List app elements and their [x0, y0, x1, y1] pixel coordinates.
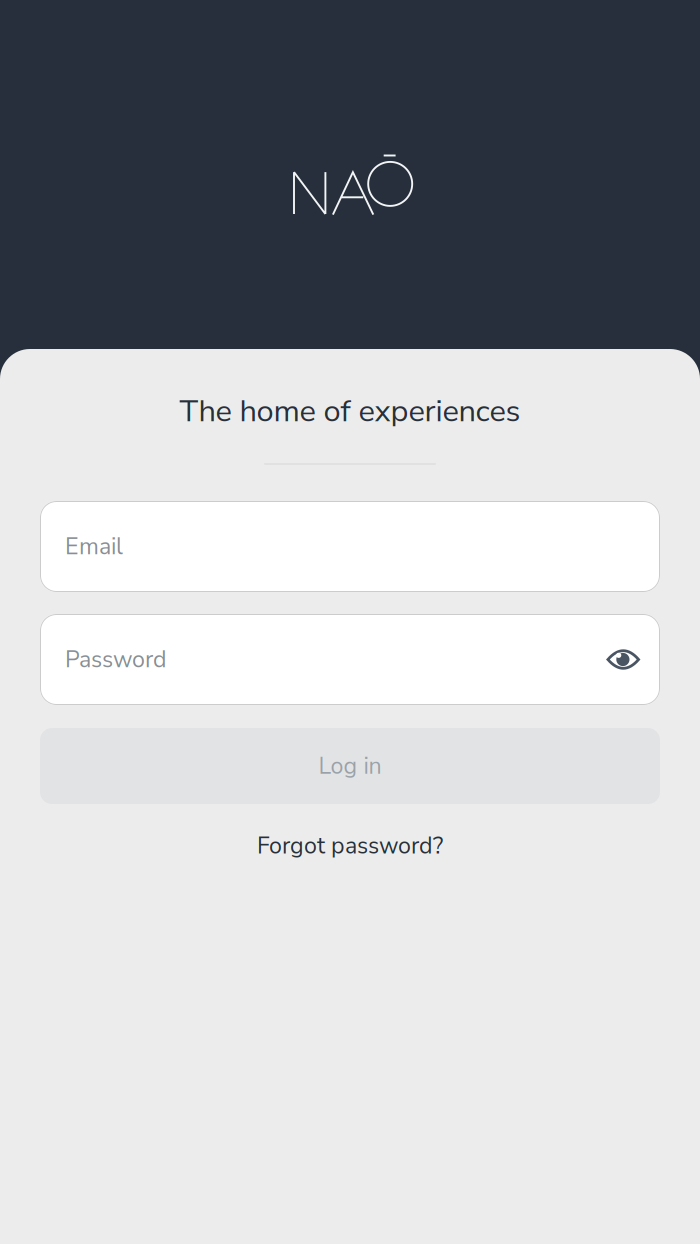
button[interactable]: Log in — [40, 728, 660, 804]
staticText: Forgot password? — [257, 830, 443, 862]
staticText: Password — [65, 644, 167, 675]
button[interactable]: Password — [40, 614, 660, 705]
staticText: Email — [65, 531, 123, 562]
button[interactable]: Email — [40, 501, 660, 592]
staticText: Log in — [318, 750, 381, 782]
staticText: The home of experiences — [179, 390, 520, 432]
button[interactable]: Forgot password? — [239, 822, 461, 870]
